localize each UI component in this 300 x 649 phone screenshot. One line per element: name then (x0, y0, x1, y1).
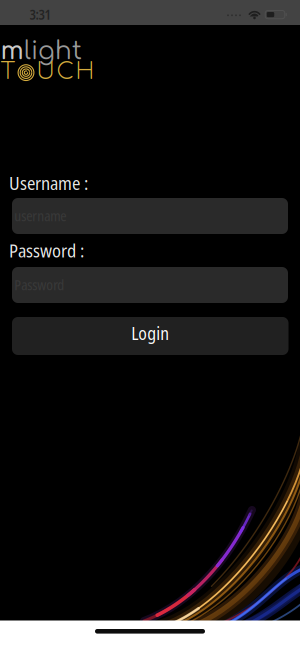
staticText: light (24, 37, 82, 65)
staticText: m (0, 37, 23, 65)
staticText: H (75, 59, 94, 84)
staticText: Password (14, 276, 64, 294)
staticText: Password : (9, 238, 84, 263)
staticText: username (14, 207, 66, 225)
staticText: C (56, 59, 73, 84)
staticText: T (0, 59, 15, 84)
staticText: 3:31 (29, 6, 50, 24)
button[interactable]: Login (12, 317, 288, 355)
staticText: U (36, 59, 54, 84)
staticText: Login (131, 321, 169, 345)
staticText: Username : (9, 170, 88, 195)
